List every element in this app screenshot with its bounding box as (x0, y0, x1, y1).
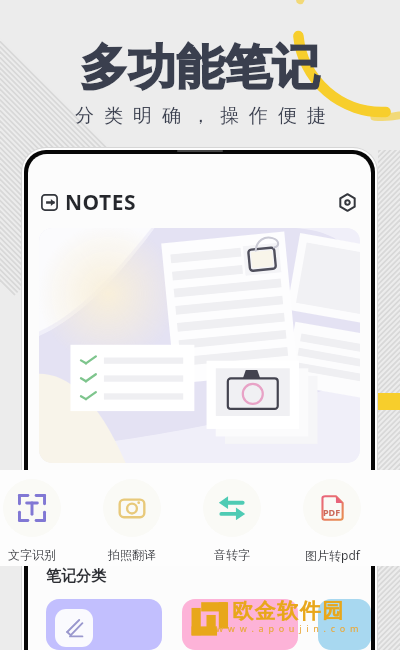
button[interactable]: 文字识别 (0, 470, 82, 566)
staticText: 音转字 (214, 547, 250, 562)
staticText: w w w . a p o u j i n . c o m (216, 622, 360, 634)
button[interactable]: 拍照翻译 (82, 470, 182, 566)
button[interactable]: 音转字 (182, 470, 282, 566)
staticText: PDF (323, 506, 341, 518)
button[interactable] (182, 599, 298, 650)
button[interactable]: PDF (282, 470, 382, 566)
button[interactable]: NOTES (41, 188, 137, 217)
button[interactable]: Settings (334, 189, 360, 215)
staticText: 多功能笔记 (80, 38, 320, 98)
button[interactable] (318, 599, 371, 650)
button[interactable] (39, 228, 360, 463)
button[interactable] (46, 599, 162, 650)
staticText: 欧金软件园 (232, 598, 345, 624)
staticText: 拍照翻译 (108, 547, 156, 562)
staticText: 文字识别 (8, 547, 56, 562)
staticText: NOTES (65, 188, 137, 217)
staticText: 分类明确，操作便捷 (70, 104, 331, 128)
staticText: 笔记分类 (46, 567, 106, 586)
staticText: 图片转pdf (305, 547, 360, 563)
